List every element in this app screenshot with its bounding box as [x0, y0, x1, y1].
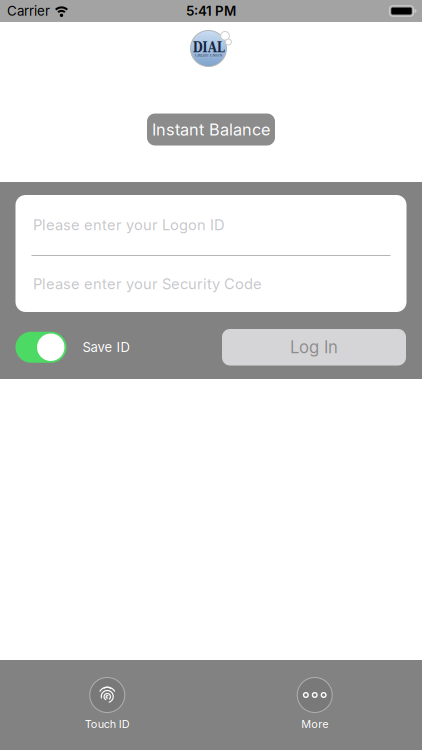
button[interactable]: More	[211, 677, 418, 731]
staticText: Instant Balance	[152, 120, 270, 139]
button[interactable]: Instant Balance	[147, 113, 275, 145]
staticText: CREDIT UNION	[165, 49, 252, 61]
staticText: DIAL	[189, 39, 229, 56]
staticText: More	[301, 717, 328, 731]
button[interactable]: Save ID	[15, 332, 66, 363]
staticText: Please enter your Security Code	[33, 275, 262, 293]
button[interactable]: Please enter your Security Code	[15, 256, 406, 312]
button[interactable]: Log In	[222, 329, 406, 365]
staticText: Please enter your Logon ID	[33, 216, 225, 234]
staticText: Log In	[290, 337, 338, 357]
staticText: Carrier	[7, 3, 50, 19]
staticText: Touch ID	[85, 717, 130, 731]
staticText: 5:41 PM	[186, 3, 236, 19]
button[interactable]: Please enter your Logon ID	[15, 195, 406, 255]
button[interactable]: Touch ID	[3, 677, 211, 731]
staticText: Save ID	[82, 339, 129, 355]
